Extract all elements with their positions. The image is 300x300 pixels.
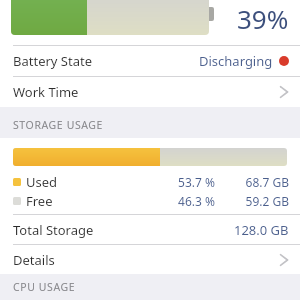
other: Open	[279, 253, 289, 267]
staticText: STORAGE USAGE	[13, 118, 104, 132]
staticText: 46.3 %	[153, 193, 215, 209]
staticText: Total Storage	[13, 221, 94, 239]
other: Open	[279, 85, 289, 99]
button[interactable]: Free	[0, 191, 300, 210]
button[interactable]: Work Time	[0, 77, 300, 107]
staticText: Battery State	[13, 52, 92, 70]
staticText: Used	[26, 173, 58, 191]
staticText: Details	[13, 251, 55, 269]
staticText: Discharging	[199, 52, 273, 70]
staticText: 39%	[237, 1, 289, 36]
staticText: 53.7 %	[153, 174, 215, 190]
staticText: Free	[26, 192, 53, 210]
staticText: CPU USAGE	[13, 280, 76, 294]
staticText: 59.2 GB	[229, 193, 289, 209]
staticText: 128.0 GB	[234, 221, 289, 239]
button[interactable]: Battery State	[0, 46, 300, 76]
button[interactable]: Details	[0, 245, 300, 274]
button[interactable]: Total Storage	[0, 215, 300, 244]
staticText: Work Time	[13, 83, 79, 101]
button[interactable]: Used	[0, 172, 300, 191]
staticText: 68.7 GB	[229, 174, 289, 190]
